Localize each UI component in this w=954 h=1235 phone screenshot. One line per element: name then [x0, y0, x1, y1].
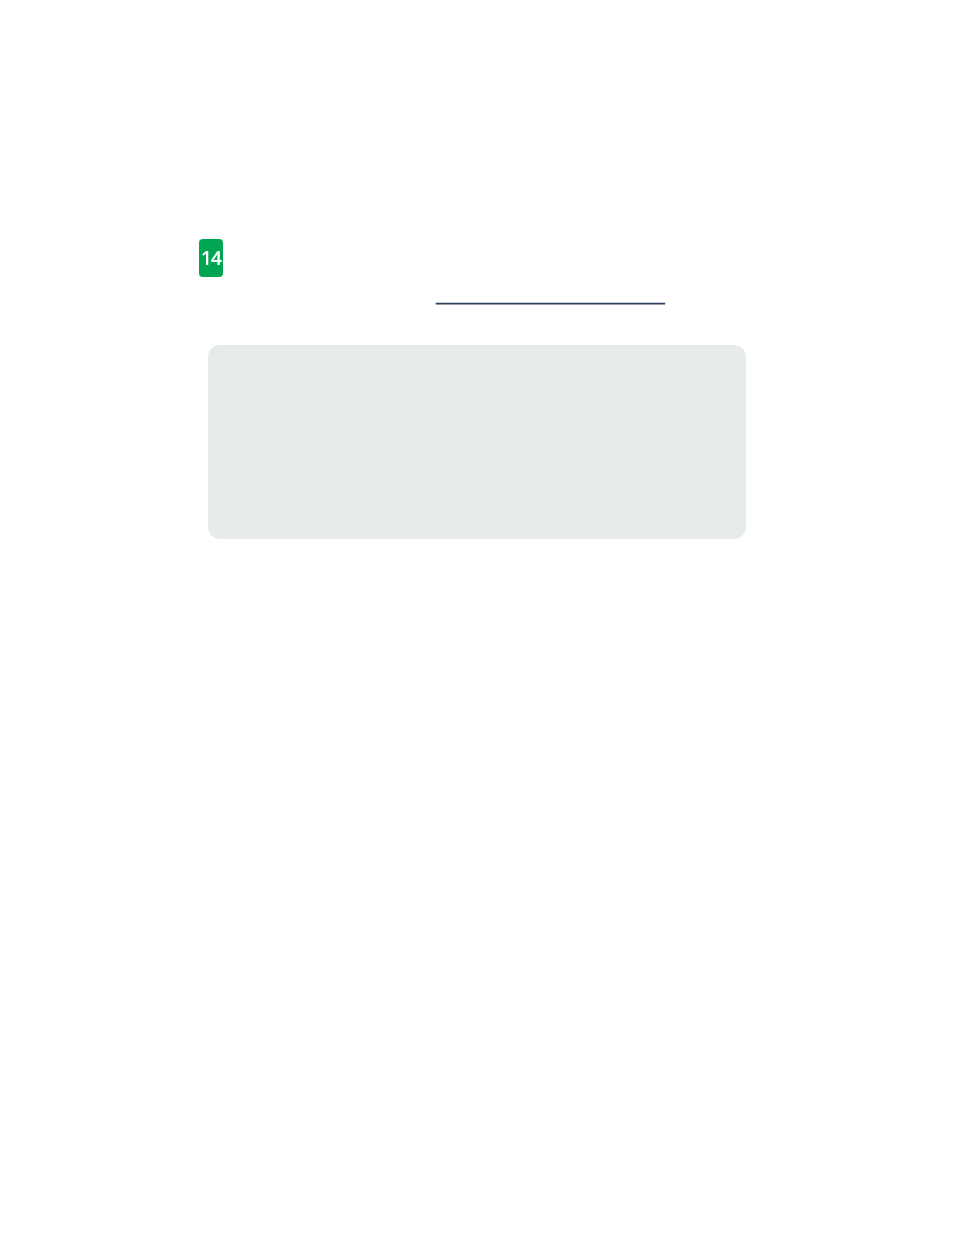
- button[interactable]: 14 items: [199, 239, 223, 277]
- staticText: 14: [201, 245, 221, 271]
